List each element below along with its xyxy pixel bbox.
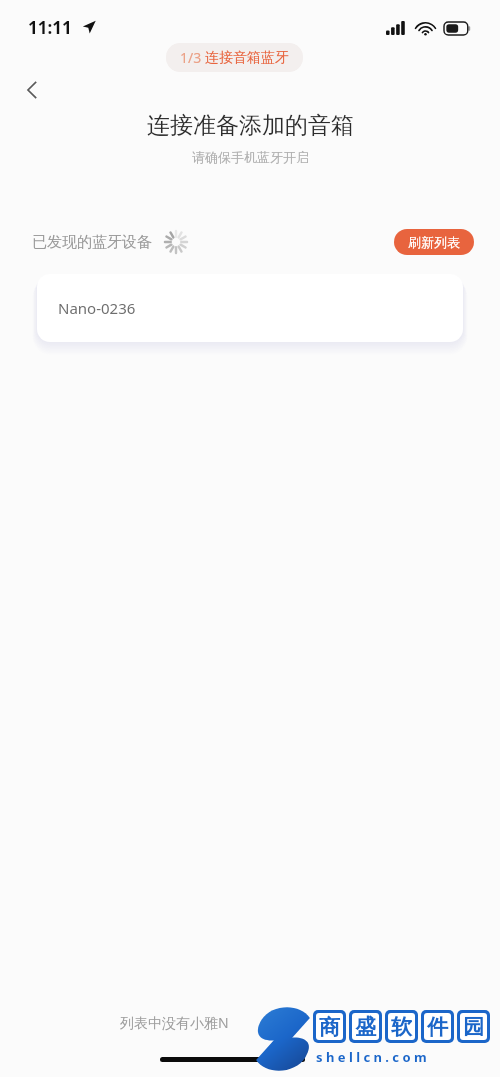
staticText: 连接音箱蓝牙 [205, 49, 289, 67]
staticText: 11:11 [28, 16, 72, 39]
button[interactable]: 刷新列表 [394, 229, 474, 255]
button[interactable]: Nano-0236 [37, 274, 463, 342]
staticText: 商 [319, 1014, 340, 1040]
staticText: 请确保手机蓝牙开启 [192, 149, 309, 165]
staticText: 连接准备添加的音箱 [147, 111, 354, 140]
button[interactable]: 列表中没有小雅N [120, 1013, 229, 1032]
button[interactable]: Back [10, 68, 54, 112]
staticText: 盛 [355, 1014, 376, 1040]
staticText: 园 [463, 1014, 484, 1040]
staticText: Nano-0236 [58, 298, 136, 318]
staticText: 1/3 [180, 48, 205, 67]
staticText: 件 [427, 1014, 448, 1040]
staticText: 已发现的蓝牙设备 [32, 233, 152, 252]
button[interactable]: 1/3 [166, 43, 303, 72]
staticText: 列表中没有小雅N [120, 1013, 229, 1032]
staticText: s h e l l c n . c o m [316, 1048, 427, 1066]
staticText: 刷新列表 [408, 234, 460, 250]
staticText: 软 [391, 1014, 412, 1040]
